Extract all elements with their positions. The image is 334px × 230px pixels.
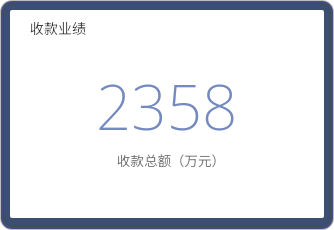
staticText: 收款业绩 [30,18,86,38]
staticText: 2358 [96,64,238,148]
button[interactable]: 收款业绩 收款总额 2358 万元 [0,0,334,230]
staticText: 收款总额（万元） [117,150,225,170]
